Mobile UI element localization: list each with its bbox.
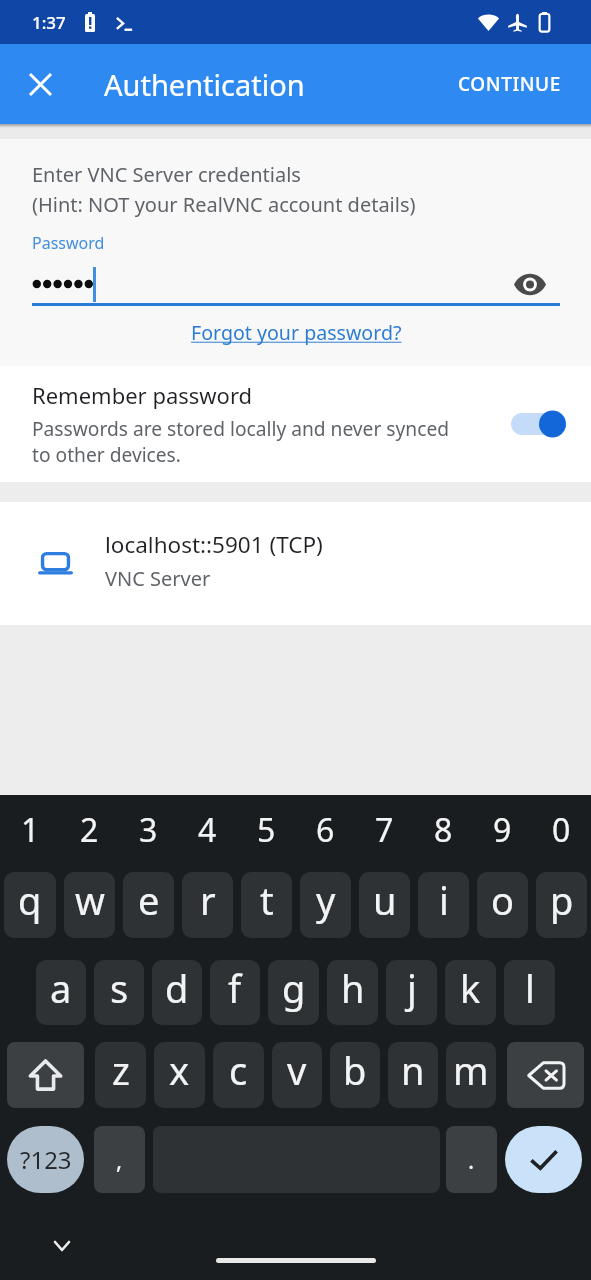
button[interactable]: Forgot your password?: [191, 319, 402, 346]
button[interactable]: 6: [296, 795, 355, 865]
button[interactable]: 3: [119, 795, 178, 865]
staticText: 3: [139, 808, 158, 852]
button[interactable]: 0: [532, 795, 591, 865]
staticText: m: [453, 1044, 489, 1096]
button[interactable]: c: [213, 1042, 264, 1108]
button[interactable]: Enter: [505, 1126, 582, 1193]
staticText: 4: [198, 808, 217, 852]
button[interactable]: y: [300, 872, 351, 938]
staticText: t: [260, 874, 274, 926]
staticText: 1:37: [32, 11, 66, 34]
staticText: p: [550, 874, 574, 926]
staticText: 5: [257, 808, 276, 852]
button[interactable]: 5: [237, 795, 296, 865]
staticText: Passwords are stored locally and never s…: [32, 415, 465, 468]
button[interactable]: ?123: [7, 1126, 84, 1193]
staticText: d: [165, 962, 189, 1014]
staticText: Authentication: [104, 65, 305, 104]
button[interactable]: 2: [60, 795, 119, 865]
button[interactable]: localhost::5901 (TCP): [0, 502, 591, 625]
button[interactable]: Close: [0, 44, 81, 124]
button[interactable]: j: [386, 960, 437, 1025]
button[interactable]: g: [268, 960, 319, 1025]
button[interactable]: m: [446, 1042, 496, 1108]
staticText: 8: [434, 808, 453, 852]
staticText: 9: [493, 808, 512, 852]
button[interactable]: v: [272, 1042, 322, 1108]
button[interactable]: ,: [94, 1126, 145, 1193]
staticText: w: [75, 874, 105, 926]
staticText: ?123: [20, 1143, 72, 1176]
staticText: VNC Server: [105, 565, 211, 592]
button[interactable]: 4: [178, 795, 237, 865]
staticText: e: [138, 874, 160, 926]
button[interactable]: d: [152, 960, 202, 1025]
button[interactable]: s: [94, 960, 144, 1025]
button[interactable]: q: [4, 872, 56, 938]
button[interactable]: 8: [414, 795, 473, 865]
staticText: q: [18, 874, 42, 926]
staticText: f: [228, 962, 242, 1014]
button[interactable]: x: [154, 1042, 205, 1108]
staticText: b: [343, 1044, 367, 1096]
button[interactable]: a: [36, 960, 86, 1025]
staticText: l: [525, 962, 535, 1014]
button[interactable]: l: [504, 960, 555, 1025]
staticText: 6: [316, 808, 335, 852]
button[interactable]: Shift: [7, 1042, 84, 1108]
staticText: s: [110, 962, 129, 1014]
staticText: 2: [80, 808, 99, 852]
staticText: Password: [32, 232, 105, 254]
staticText: v: [287, 1044, 307, 1096]
button[interactable]: 9: [473, 795, 532, 865]
button[interactable]: f: [210, 960, 260, 1025]
staticText: (Hint: NOT your RealVNC account details): [32, 191, 416, 218]
staticText: n: [401, 1044, 425, 1096]
button[interactable]: k: [445, 960, 496, 1025]
staticText: u: [373, 874, 397, 926]
button[interactable]: 7: [355, 795, 414, 865]
button[interactable]: t: [241, 872, 292, 938]
staticText: 1: [21, 808, 40, 852]
staticText: o: [491, 874, 514, 926]
staticText: Remember password: [32, 380, 253, 410]
staticText: z: [112, 1044, 130, 1096]
button[interactable]: p: [536, 872, 587, 938]
staticText: r: [200, 874, 216, 926]
button[interactable]: r: [182, 872, 233, 938]
button[interactable]: h: [327, 960, 378, 1025]
staticText: i: [439, 874, 449, 926]
button[interactable]: i: [418, 872, 469, 938]
button[interactable]: 1: [0, 795, 60, 865]
button[interactable]: CONTINUE: [436, 44, 591, 124]
button[interactable]: w: [64, 872, 115, 938]
button[interactable]: o: [477, 872, 528, 938]
staticText: 0: [552, 808, 571, 852]
staticText: x: [169, 1044, 190, 1096]
staticText: .: [468, 1144, 475, 1175]
button[interactable]: u: [359, 872, 410, 938]
staticText: h: [341, 962, 365, 1014]
button[interactable]: Remember password: [0, 366, 591, 482]
button[interactable]: z: [95, 1042, 146, 1108]
button[interactable]: Show password: [508, 265, 552, 303]
staticText: y: [316, 874, 336, 926]
staticText: CONTINUE: [458, 71, 561, 97]
button[interactable]: .: [446, 1126, 497, 1193]
button[interactable]: Backspace: [507, 1042, 584, 1108]
staticText: ,: [116, 1144, 123, 1175]
button[interactable]: e: [123, 872, 174, 938]
staticText: k: [460, 962, 481, 1014]
staticText: a: [50, 962, 72, 1014]
button[interactable]: n: [388, 1042, 438, 1108]
staticText: localhost::5901 (TCP): [105, 529, 323, 560]
button[interactable]: b: [330, 1042, 380, 1108]
staticText: g: [282, 962, 306, 1014]
staticText: Enter VNC Server credentials: [32, 161, 301, 188]
staticText: 7: [375, 808, 394, 852]
button[interactable]: Hide keyboard: [44, 1228, 80, 1264]
staticText: j: [407, 962, 417, 1014]
staticText: c: [229, 1044, 248, 1096]
